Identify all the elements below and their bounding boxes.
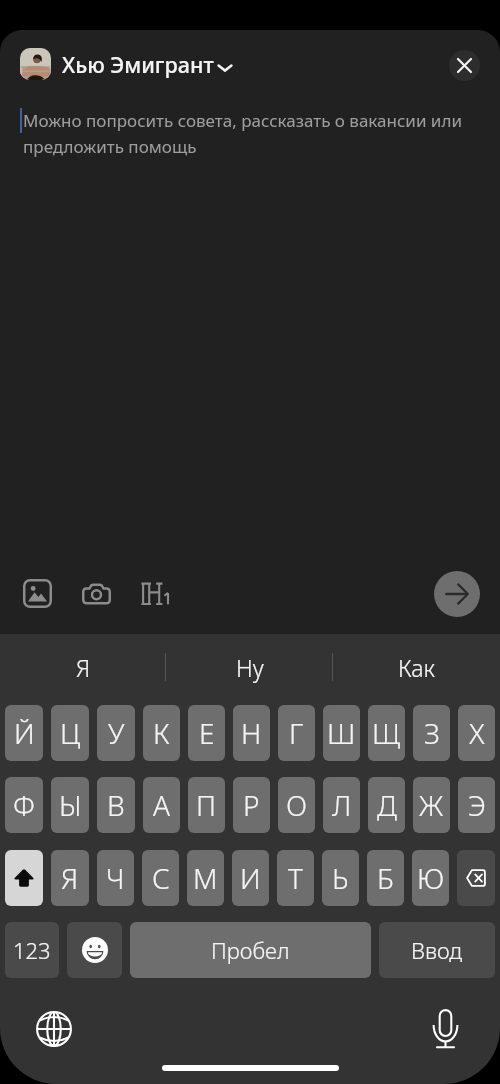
button[interactable]: Н bbox=[233, 705, 270, 761]
button[interactable]: О bbox=[278, 777, 315, 833]
button[interactable]: Л bbox=[323, 777, 360, 833]
button[interactable]: Пробел bbox=[130, 922, 371, 978]
button[interactable]: Shift bbox=[5, 850, 43, 906]
button[interactable]: Ч bbox=[97, 850, 134, 906]
staticText: Ц bbox=[60, 714, 81, 752]
staticText: 123 bbox=[13, 935, 51, 965]
staticText: О bbox=[286, 786, 308, 824]
button[interactable]: Е bbox=[188, 705, 225, 761]
staticText: Й bbox=[14, 714, 35, 752]
button[interactable]: Camera bbox=[82, 579, 111, 608]
button[interactable]: Ю bbox=[412, 850, 449, 906]
staticText: Б bbox=[377, 859, 394, 897]
staticText: Я bbox=[61, 859, 79, 897]
button[interactable]: Ввод bbox=[379, 922, 495, 978]
button[interactable]: Й bbox=[5, 705, 43, 761]
staticText: П bbox=[196, 786, 217, 824]
staticText: Щ bbox=[372, 714, 401, 752]
button[interactable]: 123 bbox=[5, 922, 59, 978]
button[interactable]: А bbox=[143, 777, 180, 833]
staticText: А bbox=[153, 786, 170, 824]
button[interactable]: З bbox=[413, 705, 450, 761]
button[interactable]: Voice input bbox=[423, 1006, 467, 1050]
button[interactable]: Э bbox=[458, 777, 495, 833]
button[interactable]: У bbox=[97, 705, 135, 761]
button[interactable]: И bbox=[232, 850, 269, 906]
staticText: И bbox=[240, 859, 261, 897]
button[interactable]: Хью Эмигрант bbox=[62, 48, 234, 80]
staticText: М bbox=[193, 859, 218, 897]
staticText: Ь bbox=[332, 859, 349, 897]
staticText: Ч bbox=[106, 859, 125, 897]
button[interactable]: Ц bbox=[51, 705, 89, 761]
staticText: Е bbox=[199, 714, 215, 752]
staticText: Т bbox=[288, 859, 303, 897]
staticText: Ж bbox=[419, 786, 444, 824]
staticText: Э bbox=[468, 786, 486, 824]
button[interactable]: Ь bbox=[322, 850, 359, 906]
staticText: Как bbox=[398, 652, 436, 683]
button[interactable]: Я bbox=[51, 850, 89, 906]
button[interactable]: Ы bbox=[51, 777, 89, 833]
staticText: К bbox=[153, 714, 170, 752]
button[interactable]: Ш bbox=[323, 705, 360, 761]
staticText: Ю bbox=[417, 859, 445, 897]
button[interactable]: Change language bbox=[32, 1007, 76, 1051]
button[interactable]: Р bbox=[233, 777, 270, 833]
staticText: Ввод bbox=[411, 935, 463, 965]
staticText: Пробел bbox=[211, 935, 290, 965]
staticText: Хью Эмигрант bbox=[62, 50, 214, 79]
button[interactable]: М bbox=[187, 850, 224, 906]
staticText: Ну bbox=[236, 652, 264, 683]
staticText: Л bbox=[332, 786, 352, 824]
staticText: С bbox=[152, 859, 170, 897]
staticText: Можно попросить совета, рассказать о вак… bbox=[23, 109, 479, 158]
staticText: Ы bbox=[59, 786, 82, 824]
button[interactable]: Emoji bbox=[67, 922, 122, 978]
button[interactable]: Х bbox=[458, 705, 495, 761]
button[interactable]: Heading bbox=[139, 579, 173, 608]
button[interactable]: Я bbox=[0, 634, 166, 700]
staticText: Х bbox=[469, 714, 485, 752]
staticText: Ш bbox=[327, 714, 356, 752]
button[interactable]: Backspace bbox=[457, 850, 495, 906]
button[interactable]: П bbox=[188, 777, 225, 833]
button[interactable]: Б bbox=[367, 850, 404, 906]
button[interactable]: Send bbox=[434, 571, 480, 617]
button[interactable]: Ф bbox=[5, 777, 43, 833]
button[interactable]: В bbox=[97, 777, 135, 833]
button[interactable]: Close bbox=[449, 50, 480, 81]
button[interactable]: С bbox=[142, 850, 179, 906]
button[interactable]: Ж bbox=[413, 777, 450, 833]
button[interactable]: Г bbox=[278, 705, 315, 761]
button[interactable]: Ну bbox=[166, 634, 333, 700]
staticText: Г bbox=[289, 714, 304, 752]
staticText: В bbox=[107, 786, 125, 824]
staticText: Р bbox=[243, 786, 260, 824]
staticText: З bbox=[424, 714, 440, 752]
staticText: У bbox=[108, 714, 125, 752]
button[interactable]: Щ bbox=[368, 705, 405, 761]
staticText: Н bbox=[241, 714, 262, 752]
staticText: Ф bbox=[13, 786, 35, 824]
button[interactable]: Д bbox=[368, 777, 405, 833]
button[interactable]: Как bbox=[333, 634, 500, 700]
button[interactable]: Add image bbox=[23, 579, 52, 608]
button[interactable]: К bbox=[143, 705, 180, 761]
staticText: Я bbox=[76, 652, 91, 683]
button[interactable]: Т bbox=[277, 850, 314, 906]
staticText: Д bbox=[377, 786, 397, 824]
